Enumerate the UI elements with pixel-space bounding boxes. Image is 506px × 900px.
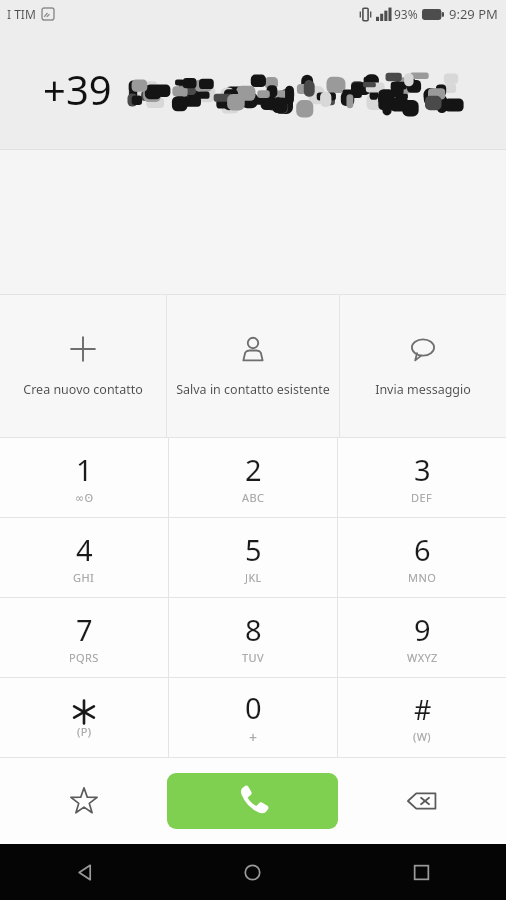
staticText: MNO [408,570,437,585]
staticText: ABC [242,490,265,505]
staticText: 2 [245,450,262,489]
staticText: 6 [414,530,431,569]
staticText: 0 [245,688,262,727]
button[interactable]: Invia messaggio [340,295,506,437]
staticText: JKL [245,570,262,585]
button[interactable]: 5 [169,518,337,597]
staticText: 93% [394,6,418,22]
button[interactable]: 3 [338,438,506,517]
staticText: 8 [245,610,262,649]
button[interactable]: Home [168,844,337,900]
staticText: WXYZ [407,650,438,665]
button[interactable]: 2 [169,438,337,517]
staticText: + [249,728,258,747]
staticText: (P) [77,724,92,739]
staticText: 1 [76,450,93,489]
button[interactable]: 7 [0,598,168,677]
staticText: 9 [414,610,431,649]
button[interactable]: Crea nuovo contatto [0,295,166,437]
staticText: 5 [245,530,262,569]
staticText: I TIM [7,6,36,22]
button[interactable]: Indietro [0,844,168,900]
staticText: (W) [413,729,432,744]
button[interactable]: 9 [338,598,506,677]
button[interactable]: Cancella [338,758,506,844]
button[interactable]: Chiama [167,773,338,829]
button[interactable]: (P) [0,678,168,757]
button[interactable]: Preferiti [0,758,167,844]
staticText: 4 [76,530,93,569]
staticText: 7 [76,610,93,649]
staticText: Crea nuovo contatto [23,381,143,398]
button[interactable]: 1 [0,438,168,517]
staticText: Salva in contatto esistente [176,381,330,398]
button[interactable]: 8 [169,598,337,677]
staticText: # [414,691,432,728]
staticText: 3 [414,450,431,489]
button[interactable]: 4 [0,518,168,597]
button[interactable]: # [338,678,506,757]
staticText: +39 [43,62,123,116]
staticText: DEF [411,490,433,505]
button[interactable]: Recenti [337,844,506,900]
button[interactable]: Salva in contatto esistente [167,295,339,437]
staticText: TUV [242,650,264,665]
staticText: Invia messaggio [375,381,471,398]
button[interactable]: 0 [169,678,337,757]
button[interactable]: 6 [338,518,506,597]
staticText: PQRS [69,650,99,665]
staticText: 9:29 PM [449,5,498,23]
staticText: ∞ʘ [75,490,94,505]
staticText: GHI [73,570,95,585]
